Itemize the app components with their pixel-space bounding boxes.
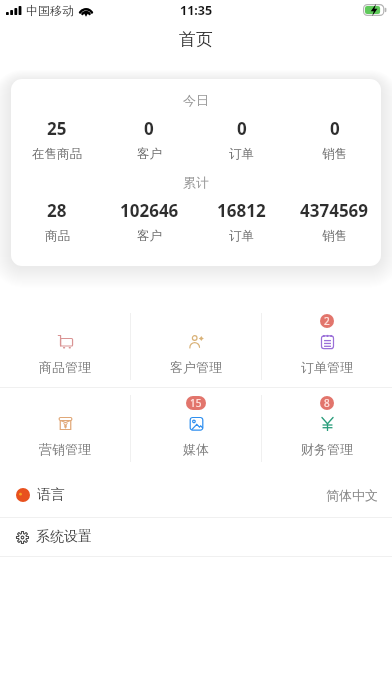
staticText: 客户 bbox=[137, 146, 162, 162]
staticText: 中国移动 bbox=[26, 3, 74, 18]
staticText: 订单 bbox=[229, 228, 254, 244]
staticText: 营销管理 bbox=[39, 441, 91, 457]
button[interactable]: 媒体 bbox=[131, 388, 261, 469]
staticText: 商品 bbox=[45, 228, 70, 244]
staticText: 28 bbox=[47, 199, 67, 222]
staticText: 今日 bbox=[11, 92, 381, 108]
staticText: 15 bbox=[190, 396, 202, 410]
staticText: 2 bbox=[324, 314, 330, 328]
staticText: 11:35 bbox=[180, 2, 213, 19]
staticText: 8 bbox=[324, 396, 330, 410]
staticText: 销售 bbox=[322, 228, 347, 244]
staticText: 财务管理 bbox=[301, 441, 353, 457]
button[interactable]: 财务管理 bbox=[262, 388, 392, 469]
staticText: 102646 bbox=[120, 199, 179, 222]
button[interactable]: 客户管理 bbox=[131, 306, 261, 387]
button[interactable]: 营销管理 bbox=[0, 388, 130, 469]
staticText: 0 bbox=[144, 117, 154, 140]
staticText: 订单管理 bbox=[301, 359, 353, 375]
button[interactable]: 商品管理 bbox=[0, 306, 130, 387]
staticText: 媒体 bbox=[183, 441, 209, 457]
staticText: 销售 bbox=[322, 146, 347, 162]
staticText: 系统设置 bbox=[36, 528, 92, 546]
staticText: 语言 bbox=[37, 486, 65, 504]
staticText: 0 bbox=[237, 117, 247, 140]
staticText: 客户管理 bbox=[170, 359, 222, 375]
button[interactable]: 订单管理 bbox=[262, 306, 392, 387]
staticText: 简体中文 bbox=[326, 487, 378, 503]
staticText: 首页 bbox=[179, 29, 213, 50]
staticText: 客户 bbox=[137, 228, 162, 244]
staticText: 0 bbox=[330, 117, 340, 140]
staticText: 订单 bbox=[229, 146, 254, 162]
staticText: 4374569 bbox=[300, 199, 369, 222]
staticText: 商品管理 bbox=[39, 359, 91, 375]
staticText: 在售商品 bbox=[32, 146, 82, 162]
staticText: 16812 bbox=[217, 199, 266, 222]
staticText: 累计 bbox=[11, 174, 381, 190]
button[interactable]: 系统设置 bbox=[0, 518, 392, 556]
button[interactable]: 语言 bbox=[0, 473, 392, 517]
staticText: 25 bbox=[47, 117, 67, 140]
